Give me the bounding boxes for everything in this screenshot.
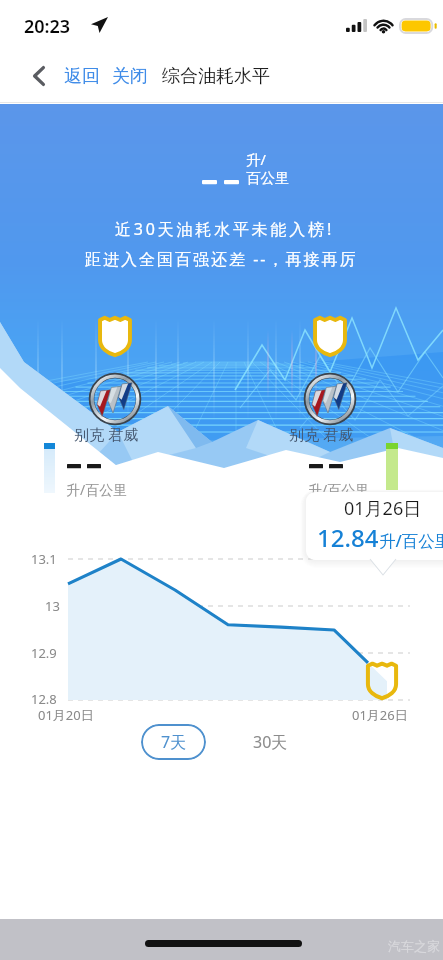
button[interactable]: Back xyxy=(24,58,54,93)
staticText: 升/百公里 xyxy=(379,529,443,552)
button[interactable]: 30天 xyxy=(240,724,300,760)
staticText: 汽车之家 xyxy=(388,938,440,954)
staticText: 30天 xyxy=(253,731,288,753)
staticText: 别克 君威 xyxy=(289,424,353,444)
staticText: 20:23 xyxy=(24,14,71,39)
staticText: 12.8 xyxy=(31,690,57,708)
staticText: 12.84 xyxy=(317,521,379,554)
staticText: 01月26日 xyxy=(352,706,408,724)
staticText: 升/百公里 xyxy=(66,480,128,499)
staticText: 别克 君威 xyxy=(74,424,138,444)
staticText: 综合油耗水平 xyxy=(162,65,270,88)
staticText: 近30天油耗水平未能入榜! xyxy=(115,218,335,240)
staticText: 01月20日 xyxy=(38,706,94,724)
staticText: 13 xyxy=(45,597,60,615)
staticText: 升/百公里 xyxy=(308,480,370,499)
staticText: 01月26日 xyxy=(344,496,422,521)
button[interactable]: 返回 xyxy=(64,65,100,88)
button[interactable]: 关闭 xyxy=(112,65,148,88)
button[interactable]: 7天 xyxy=(141,724,206,760)
staticText: 升/ xyxy=(246,149,266,169)
staticText: 百公里 xyxy=(246,169,290,187)
staticText: 7天 xyxy=(161,731,187,753)
staticText: 距进入全国百强还差 --，再接再厉 xyxy=(85,248,358,270)
staticText: 13.1 xyxy=(31,550,57,568)
staticText: 12.9 xyxy=(31,644,57,662)
